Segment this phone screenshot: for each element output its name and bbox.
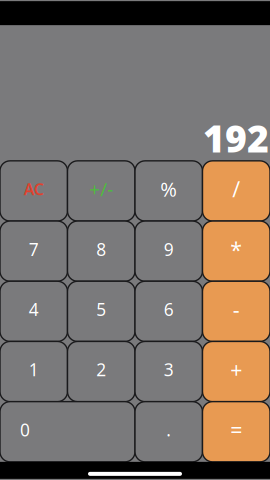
- button[interactable]: 9: [135, 221, 202, 281]
- button[interactable]: 4: [0, 281, 67, 341]
- staticText: 4: [29, 298, 39, 321]
- staticText: 2: [96, 358, 106, 381]
- staticText: +: [230, 355, 242, 384]
- button[interactable]: 7: [0, 221, 67, 281]
- button[interactable]: 1: [0, 341, 67, 402]
- staticText: 6: [164, 298, 174, 321]
- button[interactable]: 6: [135, 281, 202, 341]
- staticText: 192: [203, 113, 269, 163]
- staticText: 3: [164, 358, 174, 381]
- staticText: .: [166, 418, 171, 441]
- button[interactable]: +: [202, 341, 270, 402]
- staticText: %: [160, 176, 177, 202]
- button[interactable]: +/-: [67, 161, 135, 221]
- button[interactable]: AC: [0, 161, 67, 221]
- staticText: 0: [20, 418, 30, 441]
- button[interactable]: 3: [135, 341, 202, 402]
- staticText: 1: [29, 358, 39, 381]
- button[interactable]: 2: [67, 341, 135, 402]
- staticText: 8: [96, 238, 106, 261]
- button[interactable]: -: [202, 281, 270, 341]
- button[interactable]: 0: [0, 402, 135, 462]
- staticText: =: [230, 416, 242, 444]
- staticText: 5: [96, 298, 106, 321]
- staticText: /: [232, 175, 240, 203]
- staticText: 9: [164, 238, 174, 261]
- staticText: -: [233, 295, 240, 323]
- staticText: +/-: [89, 177, 113, 201]
- button[interactable]: *: [202, 221, 270, 281]
- button[interactable]: 5: [67, 281, 135, 341]
- button[interactable]: /: [202, 161, 270, 221]
- staticText: 7: [29, 238, 39, 261]
- staticText: *: [230, 235, 242, 263]
- button[interactable]: .: [135, 402, 202, 462]
- button[interactable]: %: [135, 161, 202, 221]
- staticText: AC: [24, 178, 44, 199]
- button[interactable]: 8: [67, 221, 135, 281]
- button[interactable]: =: [202, 402, 270, 462]
